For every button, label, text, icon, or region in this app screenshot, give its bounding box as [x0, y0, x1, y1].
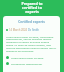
button[interactable]: Consectetur adipiscing elit [6, 62, 60, 65]
staticText: Lorem ipsum dolor sit amet, consectetur … [6, 35, 57, 53]
staticText: Dr. Smith [28, 28, 39, 32]
staticText: Prepared to certified to experts [0, 1, 64, 14]
button[interactable]: Lorem ipsum dolor sit amet [6, 56, 60, 59]
staticText: Consectetur adipiscing elit [11, 62, 43, 65]
staticText: 14 March 2024 [9, 28, 27, 32]
staticText: Lorem ipsum dolor sit amet [11, 56, 44, 59]
staticText: Certified experts [3, 20, 60, 24]
